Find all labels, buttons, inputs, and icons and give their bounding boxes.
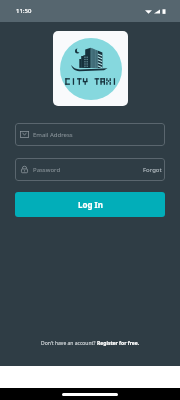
button[interactable]: Email Address xyxy=(15,123,165,146)
staticText: Don't have an account? xyxy=(41,340,97,347)
staticText: Log In xyxy=(78,199,103,210)
staticText: Forgot xyxy=(143,166,162,174)
staticText: Register for free. xyxy=(97,340,140,347)
button[interactable]: Register for free. xyxy=(97,340,140,347)
staticText: Email Address xyxy=(33,131,73,139)
staticText: 11:50 xyxy=(16,7,32,15)
staticText: Password xyxy=(33,166,61,174)
button[interactable]: Forgot xyxy=(143,166,162,174)
button[interactable]: Log In xyxy=(15,192,165,217)
button[interactable]: Password xyxy=(15,158,165,181)
